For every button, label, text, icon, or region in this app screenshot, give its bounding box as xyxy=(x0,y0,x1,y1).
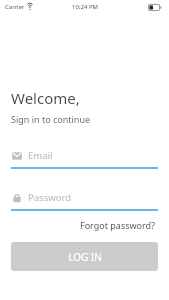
staticText: LOG IN xyxy=(68,250,102,264)
staticText: 10:24 PM xyxy=(72,3,98,11)
staticText: Welcome, xyxy=(11,88,80,108)
button[interactable]: LOG IN xyxy=(11,242,158,271)
button[interactable]: Password xyxy=(11,189,158,206)
button[interactable]: Forgot password? xyxy=(78,217,158,233)
staticText: Email xyxy=(28,149,53,162)
staticText: Sign in to continue xyxy=(11,113,91,125)
staticText: Forgot password? xyxy=(80,219,156,231)
staticText: Carrier xyxy=(5,3,25,11)
other: Email xyxy=(11,150,22,161)
staticText: Password xyxy=(28,191,71,204)
other: Password xyxy=(11,192,22,203)
button[interactable]: Email xyxy=(11,147,158,164)
